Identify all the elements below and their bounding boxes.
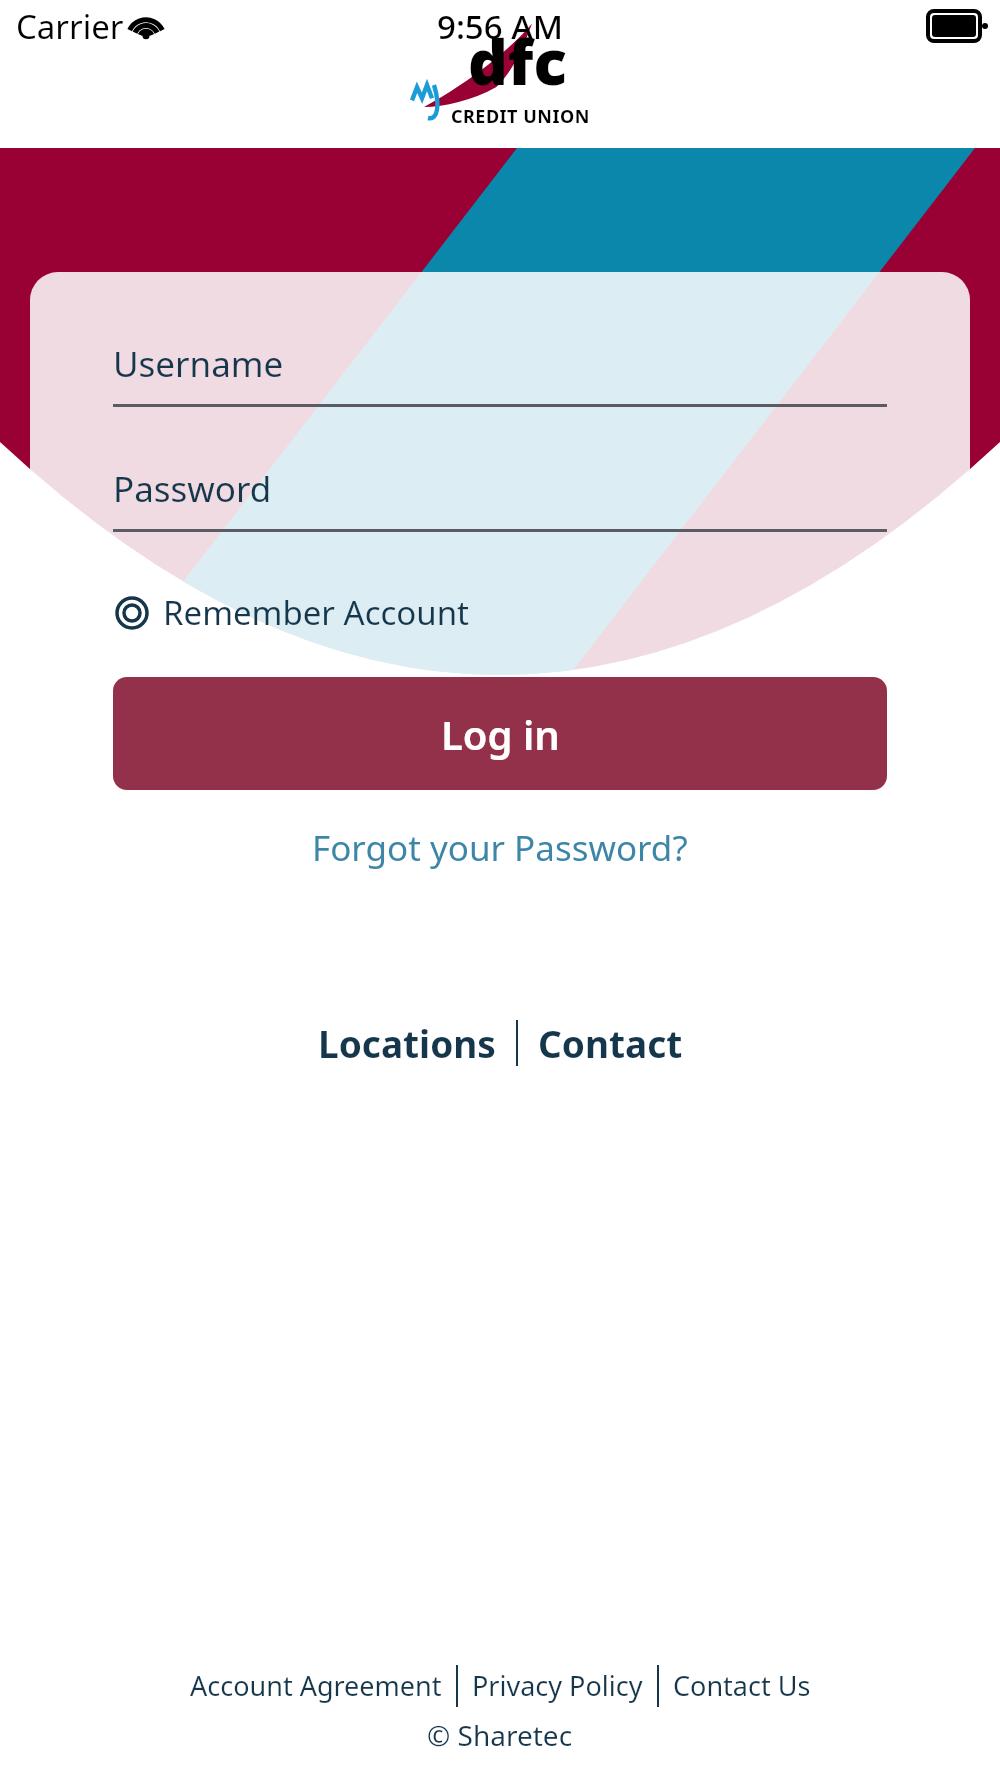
staticText: Log in xyxy=(441,707,560,761)
button[interactable]: Contact Us xyxy=(667,1661,817,1710)
button[interactable]: Privacy Policy xyxy=(466,1661,649,1710)
button[interactable]: Locations xyxy=(310,1012,504,1074)
staticText: CREDIT UNION xyxy=(451,104,590,129)
staticText: Username xyxy=(113,340,284,388)
staticText: Remember Account xyxy=(163,590,470,635)
staticText: 9:56 AM xyxy=(437,4,564,49)
staticText: © Sharetec xyxy=(427,1716,573,1754)
staticText: Password xyxy=(113,465,272,513)
button[interactable]: Contact xyxy=(530,1012,691,1074)
staticText: dfcu xyxy=(468,19,600,111)
button[interactable]: Remember Account xyxy=(113,584,472,641)
button[interactable]: Log in xyxy=(113,677,887,790)
button[interactable]: Account Agreement xyxy=(184,1661,448,1710)
button[interactable]: Forgot your Password? xyxy=(302,816,698,880)
staticText: Carrier xyxy=(16,4,124,49)
